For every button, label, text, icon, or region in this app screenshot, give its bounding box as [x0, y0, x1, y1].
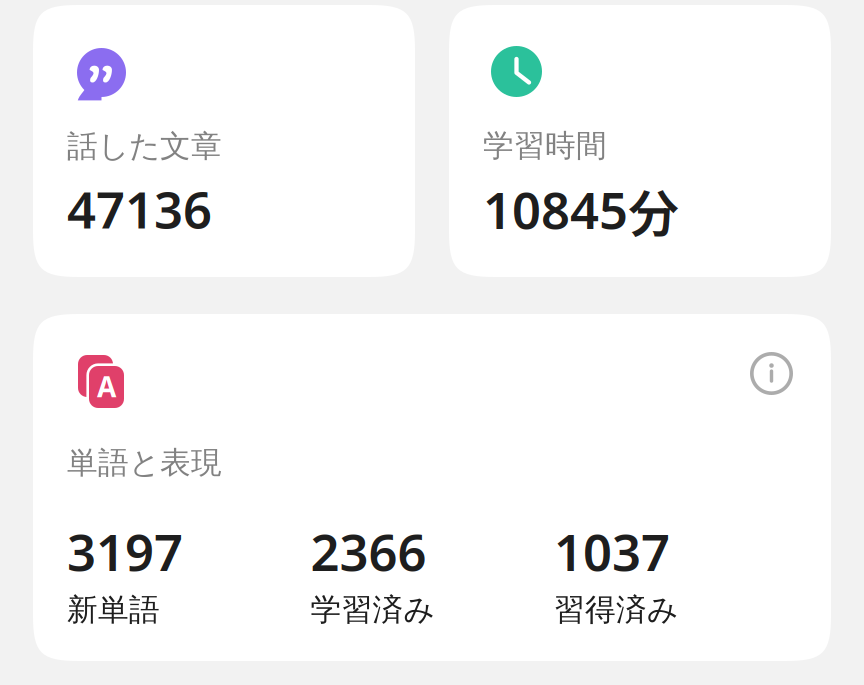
staticText: 10845分 [483, 175, 679, 246]
staticText: 新単語 [67, 591, 160, 629]
staticText: 学習済み [310, 591, 434, 629]
staticText: 習得済み [554, 591, 678, 629]
staticText: A [97, 368, 116, 405]
staticText: 単語と表現 [67, 444, 222, 482]
staticText: 1037 [554, 518, 670, 585]
staticText: 47136 [67, 175, 212, 242]
staticText: 2366 [310, 518, 426, 585]
button[interactable]: A [33, 314, 831, 661]
staticText: 3197 [67, 518, 183, 585]
staticText: 話した文章 [67, 127, 222, 165]
staticText: 学習時間 [483, 127, 607, 165]
button[interactable]: 学習時間 [449, 5, 831, 277]
button[interactable]: 話した文章 [33, 5, 415, 277]
